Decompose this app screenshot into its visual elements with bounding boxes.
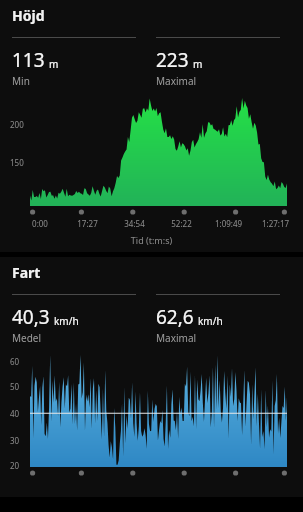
staticText: 40,3: [12, 304, 50, 330]
staticText: Medel: [12, 331, 42, 345]
staticText: 50: [10, 381, 20, 392]
button[interactable]: Fart: [0, 257, 303, 497]
staticText: 200: [10, 119, 24, 130]
staticText: 20: [10, 460, 20, 471]
staticText: 60: [10, 356, 20, 367]
staticText: 150: [10, 157, 24, 168]
staticText: km/h: [198, 314, 223, 328]
staticText: Tid (t:m:s): [0, 234, 303, 246]
staticText: 30: [10, 435, 20, 446]
staticText: 1:09:49: [205, 218, 252, 229]
staticText: m: [193, 57, 203, 71]
staticText: 34:54: [111, 218, 158, 229]
staticText: Maximal: [156, 74, 197, 88]
staticText: km/h: [54, 314, 79, 328]
staticText: 0:00: [16, 218, 64, 229]
staticText: Höjd: [12, 6, 45, 25]
staticText: 113: [12, 47, 45, 73]
staticText: 17:27: [64, 218, 111, 229]
staticText: 1:27:17: [252, 218, 299, 229]
staticText: 40: [10, 408, 20, 419]
staticText: 62,6: [156, 304, 194, 330]
staticText: Maximal: [156, 331, 197, 345]
staticText: 52:22: [158, 218, 205, 229]
button[interactable]: Höjd: [0, 0, 303, 252]
staticText: Min: [12, 74, 30, 88]
staticText: Fart: [12, 263, 41, 282]
staticText: m: [49, 57, 59, 71]
staticText: 223: [156, 47, 189, 73]
